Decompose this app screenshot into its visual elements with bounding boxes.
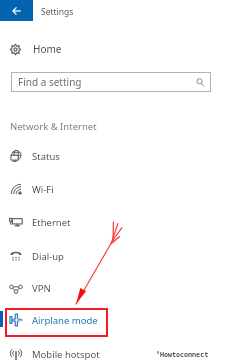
staticText: Airplane mode [32, 314, 98, 327]
staticText: °Howtoconnect [156, 350, 209, 359]
button[interactable]: VPN [0, 273, 231, 303]
button[interactable]: Wi-Fi [0, 174, 231, 204]
button[interactable]: Dial-up [0, 241, 231, 271]
button[interactable]: Home [0, 38, 231, 60]
button[interactable]: Status [0, 141, 231, 171]
staticText: Network & Internet [10, 120, 97, 133]
staticText: Dial-up [32, 250, 64, 263]
staticText: VPN [32, 282, 51, 295]
button[interactable]: Airplane mode [0, 305, 231, 335]
button[interactable]: Find a setting [11, 72, 211, 92]
button[interactable]: Back [0, 0, 33, 21]
button[interactable]: Ethernet [0, 207, 231, 237]
staticText: Status [32, 150, 60, 163]
staticText: Settings [41, 6, 74, 18]
staticText: Ethernet [32, 216, 71, 229]
staticText: Mobile hotspot [32, 348, 100, 361]
button[interactable]: Mobile hotspot [0, 339, 231, 364]
staticText: Find a setting [18, 75, 82, 89]
staticText: Home [33, 42, 62, 56]
staticText: Wi-Fi [32, 183, 54, 196]
